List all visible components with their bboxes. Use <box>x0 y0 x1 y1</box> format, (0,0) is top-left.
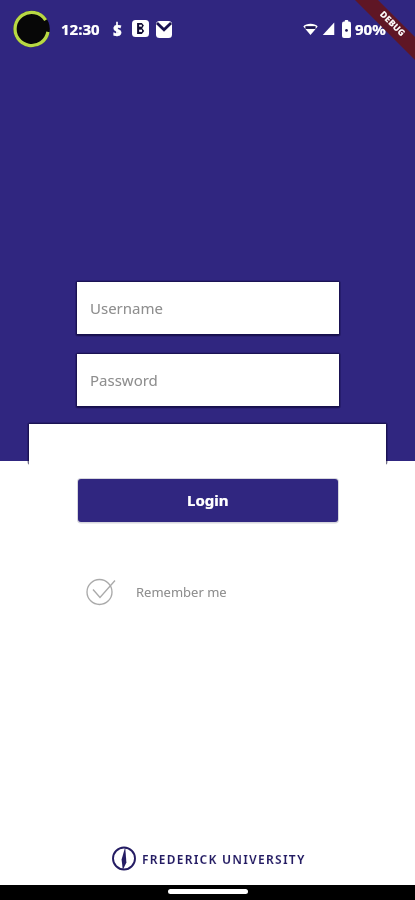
staticText: FREDERICK UNIVERSITY <box>142 851 306 867</box>
button[interactable]: Password <box>77 354 339 406</box>
staticText: 90% <box>355 19 386 39</box>
button[interactable]: Frederick University logo <box>112 846 306 871</box>
staticText: S <box>113 20 122 38</box>
button[interactable]: Username <box>77 282 339 334</box>
button[interactable]: Login <box>78 479 338 522</box>
button[interactable]: Remember me <box>80 570 227 614</box>
staticText: Password <box>90 370 158 390</box>
other: Frederick University logo <box>112 846 136 871</box>
staticText: 12:30 <box>61 19 100 39</box>
staticText: Username <box>90 298 163 318</box>
staticText: Login <box>187 490 229 510</box>
staticText: Remember me <box>136 583 227 601</box>
staticText: DEBUG <box>377 8 408 39</box>
